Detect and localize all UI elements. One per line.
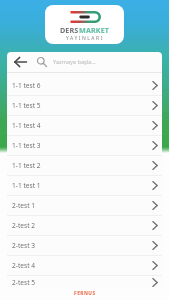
staticText: 2-test 4 bbox=[12, 261, 36, 270]
button[interactable]: 1-1 test 4 bbox=[7, 116, 162, 136]
staticText: 1-1 test 2 bbox=[12, 161, 41, 170]
button[interactable]: 1-1 test 2 bbox=[7, 156, 162, 176]
button[interactable]: 2-test 5 bbox=[7, 276, 162, 289]
button[interactable]: 1-1 test 1 bbox=[7, 176, 162, 196]
staticText: 1-1 test 4 bbox=[12, 121, 41, 130]
staticText: 2-test 2 bbox=[12, 221, 36, 230]
button[interactable]: 1-1 test 6 bbox=[7, 76, 162, 96]
staticText: 1-1 test 3 bbox=[12, 141, 41, 150]
staticText: 1-1 test 1 bbox=[12, 181, 41, 190]
button[interactable]: 2-test 4 bbox=[7, 256, 162, 276]
button[interactable]: 1-1 test 5 bbox=[7, 96, 162, 116]
staticText: 2-test 1 bbox=[12, 201, 36, 210]
button[interactable]: Back bbox=[12, 52, 29, 72]
button[interactable]: 2-test 1 bbox=[7, 196, 162, 216]
button[interactable]: 2-test 3 bbox=[7, 236, 162, 256]
staticText: 2-test 3 bbox=[12, 241, 36, 250]
staticText: 1-1 test 6 bbox=[12, 81, 41, 90]
staticText: FERNUS bbox=[74, 290, 96, 297]
staticText: DERS bbox=[60, 25, 79, 35]
staticText: YAYINLARI bbox=[66, 35, 104, 42]
staticText: MARKET bbox=[79, 25, 110, 35]
button[interactable]: 1-1 test 3 bbox=[7, 136, 162, 156]
staticText: Yazmaya başla... bbox=[53, 58, 96, 66]
staticText: 1-1 test 5 bbox=[12, 101, 41, 110]
button[interactable]: 2-test 2 bbox=[7, 216, 162, 236]
staticText: 2-test 5 bbox=[12, 278, 36, 287]
